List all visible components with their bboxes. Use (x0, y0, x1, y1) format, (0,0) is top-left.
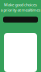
staticText: a priority at mealtimes (0, 7, 40, 13)
staticText: Make good choices (4, 2, 37, 7)
